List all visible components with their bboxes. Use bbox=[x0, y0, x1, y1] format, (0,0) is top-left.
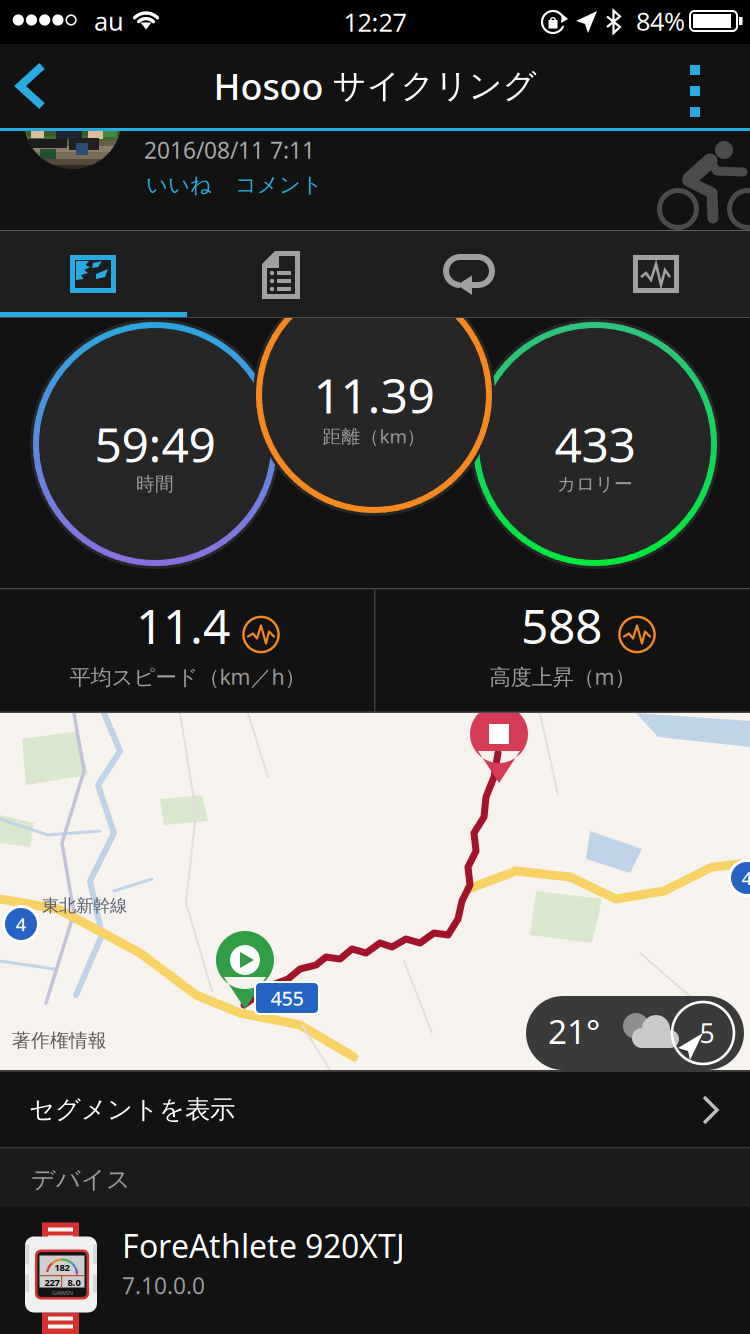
staticText: au bbox=[94, 4, 124, 38]
button[interactable]: セグメントを表示 bbox=[0, 1072, 750, 1147]
staticText: 84% bbox=[636, 4, 685, 38]
staticText: 7.10.0.0 bbox=[122, 1270, 205, 1300]
staticText: 227 bbox=[44, 1276, 59, 1289]
staticText: GARMIN bbox=[52, 1289, 73, 1297]
staticText: 距離（km） bbox=[322, 424, 425, 448]
staticText: 433 bbox=[554, 412, 635, 476]
staticText: 8.0 bbox=[67, 1276, 80, 1289]
button[interactable]: Laps bbox=[375, 231, 563, 317]
staticText: 東北新幹線 bbox=[42, 895, 127, 916]
button[interactable]: コメント bbox=[235, 165, 331, 205]
staticText: 4 bbox=[15, 912, 26, 936]
staticText: デバイス bbox=[31, 1165, 131, 1194]
staticText: サイクリング bbox=[332, 65, 536, 106]
staticText: 4 bbox=[741, 866, 750, 890]
staticText: 588 bbox=[521, 594, 602, 657]
staticText: 2016/08/11 7:11 bbox=[144, 135, 315, 165]
staticText: 11.39 bbox=[313, 363, 434, 427]
button[interactable]: いいね bbox=[146, 165, 222, 205]
staticText: 5 bbox=[699, 1015, 714, 1051]
staticText: 21° bbox=[548, 1009, 600, 1053]
button[interactable]: Back bbox=[0, 44, 66, 128]
staticText: 455 bbox=[270, 985, 303, 1011]
staticText: Hosoo bbox=[213, 62, 323, 110]
staticText: 著作権情報 bbox=[12, 1029, 107, 1052]
staticText: 高度上昇（m） bbox=[489, 662, 635, 691]
staticText: セグメントを表示 bbox=[29, 1094, 235, 1125]
staticText: 時間 bbox=[136, 472, 174, 495]
staticText: 182 bbox=[54, 1261, 69, 1274]
button[interactable]: More options bbox=[666, 44, 750, 128]
staticText: いいね bbox=[146, 172, 212, 198]
button[interactable]: Map bbox=[0, 231, 188, 317]
button[interactable]: 182 bbox=[0, 1210, 750, 1326]
staticText: 59:49 bbox=[94, 412, 215, 476]
staticText: 平均スピード（km／h） bbox=[69, 662, 305, 691]
staticText: 11.4 bbox=[136, 594, 230, 657]
button[interactable]: Charts bbox=[563, 231, 750, 317]
button[interactable]: Details bbox=[188, 231, 375, 317]
staticText: カロリー bbox=[557, 472, 633, 495]
staticText: コメント bbox=[235, 172, 323, 198]
staticText: ForeAthlete 920XTJ bbox=[122, 1224, 405, 1267]
staticText: 12:27 bbox=[343, 5, 406, 39]
